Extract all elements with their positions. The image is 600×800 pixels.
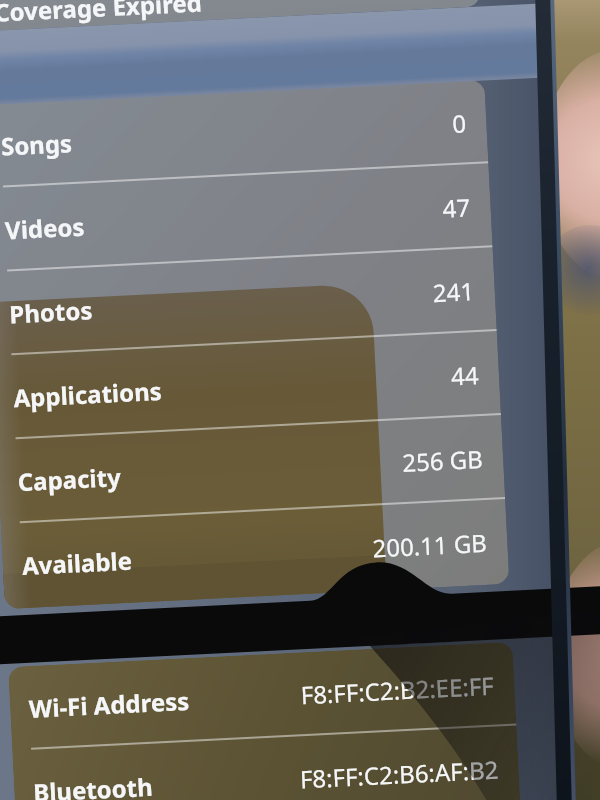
staticText: F8:FF:C2:B6:AF:B2 [299, 753, 499, 795]
button[interactable]: Photos [0, 247, 497, 356]
button[interactable]: Available [1, 499, 509, 608]
staticText: Capacity [17, 460, 122, 498]
staticText: 241 [432, 274, 476, 309]
staticText: 256 GB [401, 442, 484, 479]
staticText: 47 [442, 190, 471, 225]
staticText: Coverage Expired [0, 0, 203, 29]
staticText: F8:FF:C2:B2:EE:FF [300, 669, 495, 711]
button[interactable]: Bluetooth [12, 726, 521, 800]
button[interactable]: Wi-Fi Address [8, 642, 517, 751]
button[interactable]: Capacity [0, 415, 505, 524]
staticText: 0 [452, 106, 467, 140]
staticText: Photos [8, 293, 93, 330]
staticText: Videos [4, 209, 86, 246]
staticText: Bluetooth [32, 770, 154, 800]
staticText: Available [21, 544, 134, 582]
staticText: 200.11 GB [372, 526, 488, 564]
staticText: 44 [450, 358, 480, 392]
staticText: Wi-Fi Address [28, 684, 191, 725]
button[interactable]: Videos [0, 163, 493, 272]
button[interactable]: Applications [0, 331, 501, 440]
button[interactable]: Songs [0, 79, 488, 188]
button[interactable]: Coverage Expired [0, 0, 481, 32]
staticText: Songs [0, 126, 74, 163]
staticText: Applications [13, 374, 163, 414]
